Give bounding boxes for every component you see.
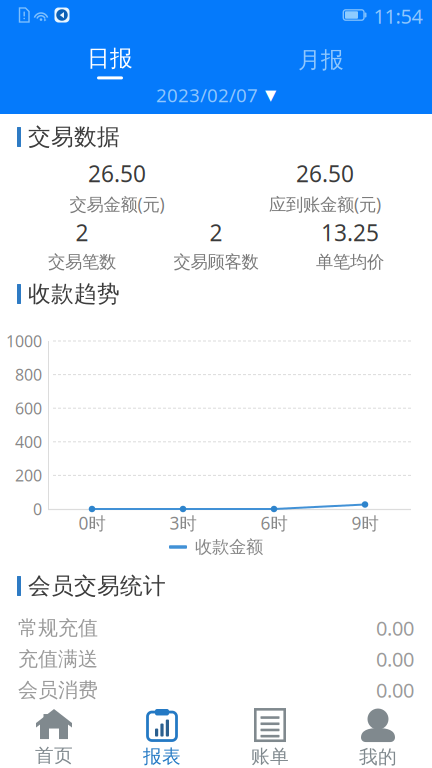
- staticText: 3时: [169, 511, 196, 534]
- button[interactable]: 会员消费: [0, 675, 432, 705]
- staticText: 交易数据: [28, 123, 120, 151]
- staticText: 报表: [143, 745, 181, 768]
- staticText: 日报: [87, 45, 133, 72]
- staticText: 充值满送: [18, 647, 98, 671]
- staticText: 收款趋势: [28, 280, 120, 308]
- staticText: 1000: [6, 330, 42, 352]
- staticText: 0.00: [376, 677, 414, 703]
- staticText: 我的: [359, 745, 397, 768]
- staticText: 13.25: [321, 217, 379, 247]
- staticText: 单笔均价: [316, 251, 384, 273]
- staticText: 2: [209, 217, 222, 247]
- staticText: 常规充值: [18, 616, 98, 640]
- staticText: 11:54: [373, 3, 422, 29]
- staticText: 应到账金额(元): [269, 192, 381, 215]
- staticText: 交易顾客数: [173, 251, 258, 273]
- staticText: 首页: [35, 744, 73, 767]
- staticText: 26.50: [88, 158, 146, 188]
- staticText: 月报: [298, 46, 344, 74]
- staticText: 800: [15, 364, 42, 385]
- button[interactable]: 我的: [324, 706, 432, 768]
- button[interactable]: 2023/02/07: [156, 82, 276, 108]
- button[interactable]: 日报: [55, 44, 165, 80]
- staticText: 收款金额: [195, 536, 263, 558]
- button[interactable]: 首页: [0, 706, 108, 768]
- staticText: 0.00: [376, 615, 414, 641]
- staticText: 2023/02/07: [156, 83, 258, 107]
- staticText: 2: [75, 217, 88, 247]
- staticText: 6时: [260, 511, 287, 534]
- button[interactable]: 常规充值: [0, 613, 432, 643]
- staticText: ▼: [265, 87, 276, 103]
- staticText: 交易金额(元): [69, 192, 164, 215]
- staticText: 26.50: [296, 158, 354, 188]
- staticText: 9时: [351, 511, 378, 534]
- staticText: 0时: [78, 511, 105, 534]
- staticText: 400: [15, 431, 42, 452]
- button[interactable]: 充值满送: [0, 644, 432, 674]
- staticText: 600: [15, 398, 42, 419]
- staticText: 交易笔数: [48, 251, 116, 273]
- staticText: 200: [15, 465, 42, 486]
- staticText: 会员消费: [18, 678, 98, 702]
- button[interactable]: 账单: [216, 706, 324, 768]
- button[interactable]: 报表: [108, 706, 216, 768]
- button[interactable]: 月报: [266, 42, 376, 78]
- staticText: 会员交易统计: [28, 572, 166, 600]
- staticText: 0.00: [376, 646, 414, 672]
- staticText: 0: [33, 498, 42, 520]
- staticText: 账单: [251, 745, 289, 768]
